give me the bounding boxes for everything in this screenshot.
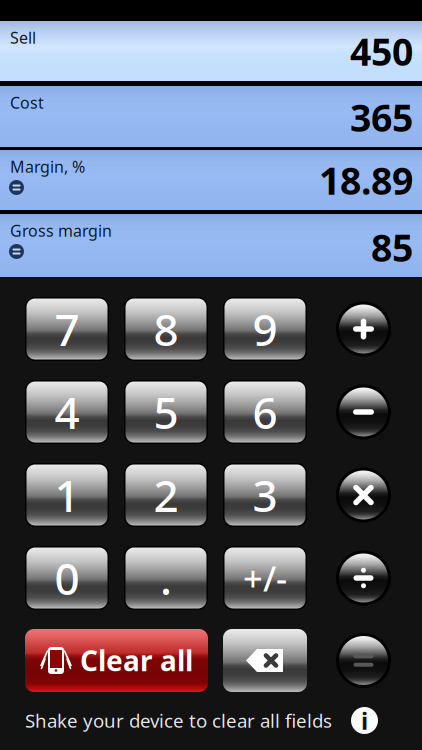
- staticText: 365: [350, 92, 413, 142]
- button[interactable]: +/-: [223, 546, 307, 610]
- staticText: Clear all: [80, 642, 193, 679]
- staticText: 2: [153, 466, 178, 524]
- button[interactable]: 9: [223, 297, 307, 361]
- staticText: 18.89: [319, 155, 413, 205]
- staticText: Margin, %: [10, 156, 85, 177]
- button[interactable]: Plus: [336, 301, 391, 356]
- staticText: Cost: [10, 92, 44, 113]
- button[interactable]: 7: [25, 297, 109, 361]
- staticText: 4: [54, 383, 79, 441]
- button[interactable]: Multiply: [336, 467, 391, 522]
- staticText: .: [160, 549, 172, 607]
- staticText: 85: [371, 222, 413, 272]
- button[interactable]: .: [124, 546, 208, 610]
- staticText: Gross margin: [10, 220, 112, 241]
- button[interactable]: Divide: [336, 550, 391, 605]
- button[interactable]: 2: [124, 463, 208, 527]
- button[interactable]: Equals: [336, 633, 391, 688]
- staticText: 6: [252, 383, 277, 441]
- staticText: i: [361, 705, 368, 736]
- button[interactable]: 4: [25, 380, 109, 444]
- staticText: Sell: [10, 27, 36, 48]
- staticText: 9: [252, 300, 277, 358]
- staticText: 0: [54, 549, 79, 607]
- staticText: 7: [54, 300, 79, 358]
- staticText: 3: [252, 466, 277, 524]
- staticText: Shake your device to clear all fields: [25, 708, 332, 733]
- button[interactable]: Clear all: [25, 629, 208, 692]
- staticText: +/-: [243, 555, 287, 601]
- staticText: 5: [153, 383, 178, 441]
- staticText: 8: [153, 300, 178, 358]
- button[interactable]: 5: [124, 380, 208, 444]
- button[interactable]: Minus: [336, 384, 391, 439]
- button[interactable]: 0: [25, 546, 109, 610]
- button[interactable]: Info: [351, 707, 378, 734]
- button[interactable]: 6: [223, 380, 307, 444]
- button[interactable]: Backspace: [223, 629, 307, 692]
- button[interactable]: 8: [124, 297, 208, 361]
- staticText: 1: [54, 466, 79, 524]
- staticText: 450: [350, 26, 413, 76]
- button[interactable]: 3: [223, 463, 307, 527]
- button[interactable]: 1: [25, 463, 109, 527]
